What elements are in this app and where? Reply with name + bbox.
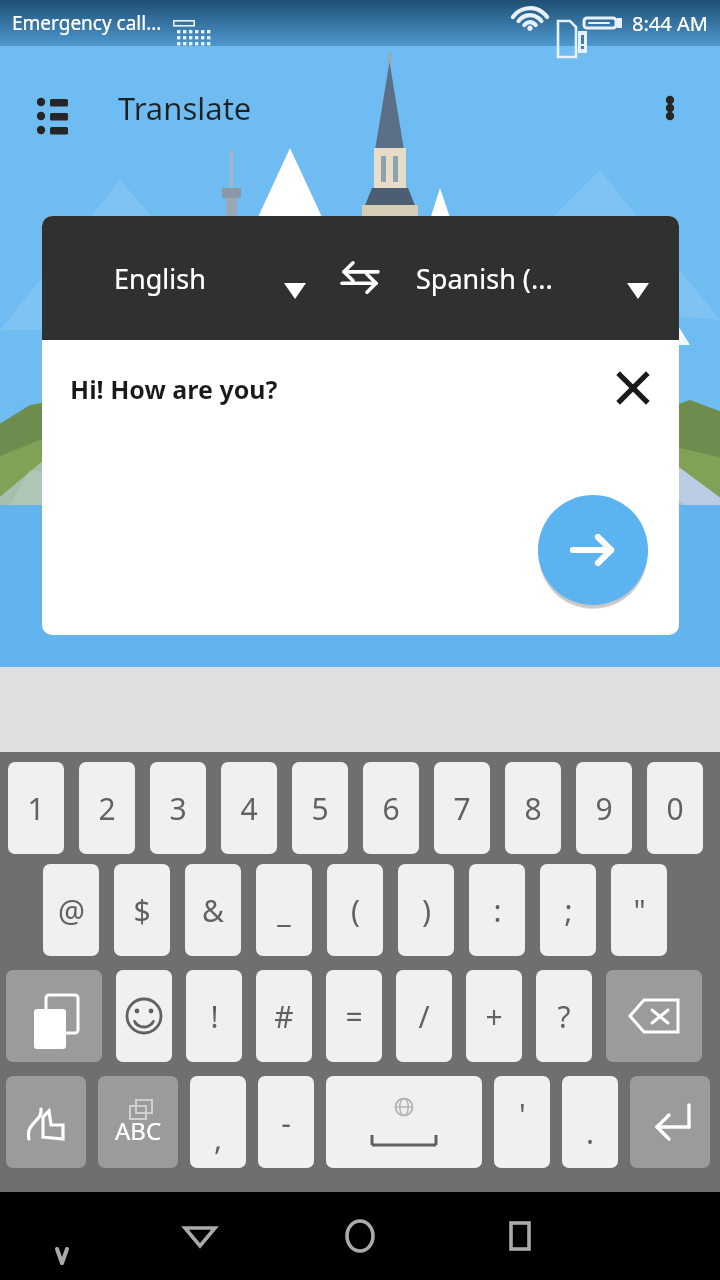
button[interactable]: Clear text: [605, 360, 661, 416]
button[interactable]: @: [43, 864, 99, 956]
button[interactable]: Enter: [630, 1076, 710, 1168]
button[interactable]: Open menu: [24, 80, 80, 136]
button[interactable]: Hide keyboard: [34, 1192, 90, 1280]
staticText: !: [210, 996, 219, 1037]
staticText: Translate: [118, 87, 252, 129]
staticText: #: [274, 996, 294, 1037]
button[interactable]: $: [114, 864, 170, 956]
button[interactable]: &: [185, 864, 241, 956]
button[interactable]: Switch to ABC: [98, 1076, 178, 1168]
button[interactable]: ;: [540, 864, 596, 956]
button[interactable]: 8: [505, 762, 561, 854]
staticText: ABC: [115, 1114, 162, 1147]
button[interactable]: #: [256, 970, 312, 1062]
button[interactable]: Symbols page: [6, 970, 102, 1062]
button[interactable]: 5: [292, 762, 348, 854]
staticText: _: [277, 890, 291, 931]
staticText: Spanish (...: [416, 260, 553, 297]
button[interactable]: English: [42, 216, 330, 340]
staticText: 2: [98, 788, 116, 829]
button[interactable]: -: [258, 1076, 314, 1168]
button[interactable]: 3: [150, 762, 206, 854]
staticText: ,: [214, 1118, 223, 1159]
button[interactable]: /: [396, 970, 452, 1062]
staticText: &: [202, 890, 224, 931]
button[interactable]: 6: [363, 762, 419, 854]
staticText: 6: [382, 788, 400, 829]
button[interactable]: More options: [642, 80, 698, 136]
staticText: 5: [311, 788, 329, 829]
button[interactable]: ,: [190, 1076, 246, 1168]
button[interactable]: Backspace: [606, 970, 702, 1062]
button[interactable]: ): [398, 864, 454, 956]
button[interactable]: Translate: [538, 495, 648, 605]
button[interactable]: Handwriting input: [6, 1076, 86, 1168]
button[interactable]: Space: [326, 1076, 482, 1168]
button[interactable]: _: [256, 864, 312, 956]
staticText: /: [418, 996, 430, 1037]
staticText: English: [114, 260, 206, 297]
button[interactable]: +: [466, 970, 522, 1062]
button[interactable]: (: [327, 864, 383, 956]
button[interactable]: [116, 970, 172, 1062]
staticText: @: [58, 890, 85, 931]
button[interactable]: ': [494, 1076, 550, 1168]
button[interactable]: ": [611, 864, 667, 956]
button[interactable]: Back: [172, 1192, 228, 1280]
staticText: ": [633, 890, 646, 931]
button[interactable]: 2: [79, 762, 135, 854]
staticText: 7: [453, 788, 471, 829]
button[interactable]: !: [186, 970, 242, 1062]
staticText: 4: [240, 788, 258, 829]
button[interactable]: =: [326, 970, 382, 1062]
button[interactable]: 1: [8, 762, 64, 854]
staticText: ;: [564, 890, 573, 931]
staticText: 1: [27, 788, 45, 829]
staticText: Hi! How are you?: [70, 372, 278, 406]
staticText: (: [351, 890, 360, 931]
staticText: 9: [595, 788, 613, 829]
staticText: $: [133, 890, 151, 931]
staticText: 0: [666, 788, 684, 829]
staticText: .: [586, 1112, 595, 1153]
button[interactable]: :: [469, 864, 525, 956]
staticText: 8: [524, 788, 542, 829]
button[interactable]: 4: [221, 762, 277, 854]
button[interactable]: Spanish (...: [390, 216, 679, 340]
button[interactable]: Swap languages: [330, 248, 390, 308]
staticText: ': [519, 1094, 526, 1135]
staticText: -: [281, 1102, 291, 1143]
staticText: :: [493, 890, 502, 931]
button[interactable]: 9: [576, 762, 632, 854]
staticText: 8:44 AM: [632, 10, 708, 37]
button[interactable]: ?: [536, 970, 592, 1062]
button[interactable]: 7: [434, 762, 490, 854]
staticText: Emergency call...: [12, 10, 162, 36]
button[interactable]: .: [562, 1076, 618, 1168]
staticText: =: [345, 996, 363, 1037]
staticText: 3: [169, 788, 187, 829]
staticText: ): [422, 890, 431, 931]
button[interactable]: 0: [647, 762, 703, 854]
staticText: +: [485, 996, 503, 1037]
button[interactable]: Home: [332, 1192, 388, 1280]
button[interactable]: Recent apps: [492, 1192, 548, 1280]
staticText: ?: [557, 996, 571, 1037]
